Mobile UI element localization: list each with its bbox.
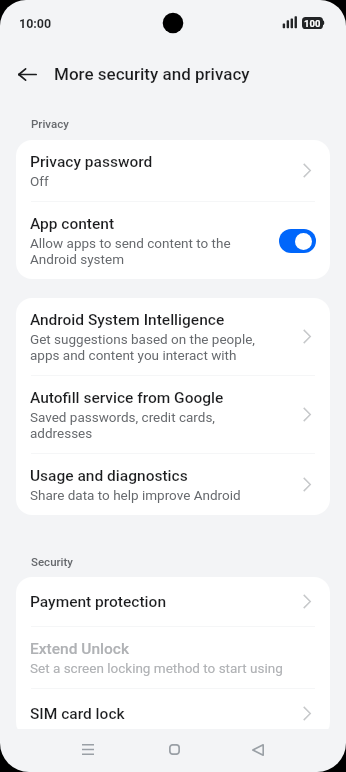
button[interactable]: Back [234, 728, 282, 771]
staticText: Payment protection [30, 592, 167, 611]
button[interactable]: App content [16, 202, 330, 279]
staticText: Privacy [31, 117, 69, 130]
button[interactable]: App content toggle [279, 229, 316, 253]
button[interactable]: Extend Unlock [16, 627, 330, 688]
staticText: 100 [304, 18, 321, 29]
button[interactable]: Back [7, 54, 47, 94]
staticText: Get suggestions based on the people, app… [30, 331, 255, 363]
button[interactable]: SIM card lock [16, 689, 330, 729]
staticText: 10:00 [19, 16, 52, 31]
button[interactable]: Home [150, 728, 198, 771]
button[interactable]: Usage and diagnostics [16, 454, 330, 515]
button[interactable]: Payment protection [16, 577, 330, 626]
staticText: Set a screen locking method to start usi… [30, 660, 283, 676]
staticText: Security [31, 555, 73, 568]
button[interactable]: Recent apps [64, 728, 112, 771]
staticText: Autofill service from Google [30, 388, 224, 407]
staticText: Usage and diagnostics [30, 466, 188, 485]
staticText: SIM card lock [30, 704, 125, 723]
staticText: Allow apps to send content to the Androi… [30, 235, 231, 267]
button[interactable]: Autofill service from Google [16, 376, 330, 453]
staticText: More security and privacy [54, 64, 250, 84]
staticText: Share data to help improve Android [30, 487, 241, 503]
button[interactable]: Privacy password [16, 140, 330, 201]
staticText: Android System Intelligence [30, 310, 225, 329]
button[interactable]: Android System Intelligence [16, 298, 330, 375]
staticText: Off [30, 173, 49, 189]
staticText: Extend Unlock [30, 639, 130, 658]
staticText: App content [30, 214, 115, 233]
staticText: Privacy password [30, 152, 153, 171]
staticText: Saved passwords, credit cards, addresses [30, 409, 216, 441]
